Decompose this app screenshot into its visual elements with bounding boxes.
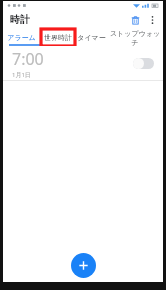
button[interactable]: ストップウォッチ	[107, 29, 163, 46]
button[interactable]: アラームを追加	[71, 253, 96, 278]
button[interactable]: タイマー	[76, 29, 107, 46]
staticText: アラーム	[7, 33, 36, 42]
button[interactable]: アラームのオン / オフ	[133, 58, 154, 69]
staticText: 7:00	[12, 48, 44, 70]
button[interactable]: 削除	[126, 11, 144, 29]
button[interactable]: 世界時計	[40, 29, 76, 46]
button[interactable]: その他のオプション	[144, 12, 160, 28]
staticText: タイマー	[77, 33, 106, 42]
button[interactable]: アラーム	[3, 29, 40, 46]
staticText: 時計	[10, 13, 30, 26]
staticText: ストップウォッチ	[107, 29, 163, 46]
button[interactable]: 7:00	[3, 46, 163, 80]
staticText: 1月1日	[12, 71, 31, 79]
staticText: 世界時計	[44, 33, 72, 42]
